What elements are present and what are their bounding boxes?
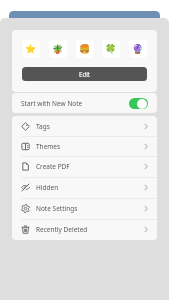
staticText: Start with New Note	[21, 99, 83, 108]
staticText: Hidden	[36, 183, 59, 192]
staticText: ⭐	[25, 44, 37, 55]
staticText: Create PDF	[36, 162, 70, 171]
staticText: Tags	[36, 122, 50, 131]
button[interactable]: Hidden	[12, 177, 157, 198]
button[interactable]: Start with New Note	[12, 93, 157, 113]
button[interactable]: Create PDF	[12, 156, 157, 177]
button[interactable]: Emoji	[76, 40, 94, 58]
button[interactable]: Note Settings	[12, 198, 157, 219]
staticText: 🪴	[52, 44, 64, 55]
button[interactable]: Edit	[22, 67, 147, 81]
staticText: 🍔	[79, 44, 91, 55]
button[interactable]: Recently Deleted	[12, 219, 157, 240]
button[interactable]: Emoji	[129, 40, 147, 58]
staticText: 🔮	[132, 44, 144, 55]
button[interactable]: Emoji	[102, 40, 120, 58]
staticText: Themes	[36, 142, 61, 151]
button[interactable]: Tags	[12, 116, 157, 136]
staticText: Note Settings	[36, 204, 78, 213]
staticText: Edit	[79, 70, 91, 78]
button[interactable]: Themes	[12, 136, 157, 156]
staticText: Recently Deleted	[36, 225, 88, 234]
button[interactable]: Emoji	[22, 40, 40, 58]
button[interactable]: Emoji	[49, 40, 67, 58]
staticText: 🍀	[105, 44, 117, 55]
